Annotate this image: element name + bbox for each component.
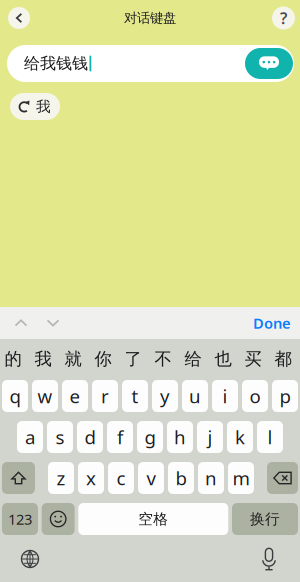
button[interactable]: s bbox=[47, 421, 73, 453]
staticText: f bbox=[117, 425, 123, 449]
staticText: o bbox=[249, 384, 260, 408]
staticText: n bbox=[205, 466, 217, 490]
button[interactable]: b bbox=[168, 462, 194, 494]
button[interactable]: k bbox=[227, 421, 253, 453]
button[interactable]: 空格 bbox=[78, 503, 228, 535]
staticText: r bbox=[101, 384, 109, 408]
button[interactable]: w bbox=[32, 380, 58, 412]
button[interactable]: u bbox=[182, 380, 208, 412]
button[interactable]: Previous field bbox=[5, 307, 37, 339]
staticText: 买 bbox=[244, 348, 261, 370]
staticText: 给 bbox=[184, 348, 201, 370]
button[interactable]: 都 bbox=[268, 339, 298, 379]
staticText: 都 bbox=[274, 348, 291, 370]
staticText: 我 bbox=[34, 348, 51, 370]
button[interactable]: p bbox=[272, 380, 298, 412]
staticText: k bbox=[235, 425, 245, 449]
button[interactable]: 换行 bbox=[232, 503, 298, 535]
staticText: h bbox=[174, 425, 186, 449]
staticText: l bbox=[267, 425, 272, 449]
staticText: m bbox=[232, 466, 249, 490]
button[interactable]: o bbox=[242, 380, 268, 412]
button[interactable]: Next keyboard bbox=[11, 540, 49, 578]
staticText: p bbox=[279, 384, 290, 408]
button[interactable]: z bbox=[48, 462, 74, 494]
button[interactable]: m bbox=[228, 462, 254, 494]
button[interactable]: Delete bbox=[267, 462, 298, 494]
button[interactable]: 不 bbox=[148, 339, 178, 379]
button[interactable]: n bbox=[198, 462, 224, 494]
button[interactable]: l bbox=[257, 421, 283, 453]
staticText: e bbox=[69, 384, 80, 408]
staticText: i bbox=[222, 384, 227, 408]
button[interactable]: Next field bbox=[37, 307, 69, 339]
staticText: c bbox=[116, 466, 125, 490]
staticText: x bbox=[86, 466, 96, 490]
staticText: j bbox=[207, 425, 212, 449]
staticText: 换行 bbox=[250, 510, 280, 528]
button[interactable]: y bbox=[152, 380, 178, 412]
button[interactable]: a bbox=[17, 421, 43, 453]
button[interactable]: Done bbox=[253, 307, 291, 339]
button[interactable]: 我 bbox=[28, 339, 58, 379]
staticText: Done bbox=[253, 313, 291, 333]
staticText: ? bbox=[280, 7, 287, 29]
button[interactable]: h bbox=[167, 421, 193, 453]
staticText: 空格 bbox=[138, 510, 168, 528]
staticText: 你 bbox=[94, 348, 111, 370]
button[interactable]: d bbox=[77, 421, 103, 453]
staticText: y bbox=[160, 384, 170, 408]
button[interactable]: 给 bbox=[178, 339, 208, 379]
button[interactable]: c bbox=[108, 462, 134, 494]
staticText: 就 bbox=[64, 348, 81, 370]
button[interactable]: f bbox=[107, 421, 133, 453]
staticText: t bbox=[131, 384, 138, 408]
staticText: g bbox=[144, 425, 155, 449]
staticText: s bbox=[55, 425, 64, 449]
button[interactable]: 123 bbox=[2, 503, 38, 535]
button[interactable]: 买 bbox=[238, 339, 268, 379]
button[interactable]: 的 bbox=[0, 339, 28, 379]
staticText: q bbox=[9, 384, 20, 408]
staticText: 对话键盘 bbox=[124, 10, 176, 26]
button[interactable]: e bbox=[62, 380, 88, 412]
button[interactable]: Shift bbox=[2, 462, 35, 494]
button[interactable]: 了 bbox=[118, 339, 148, 379]
staticText: 的 bbox=[4, 348, 21, 370]
button[interactable]: v bbox=[138, 462, 164, 494]
button[interactable]: Emoji bbox=[42, 503, 75, 535]
button[interactable]: x bbox=[78, 462, 104, 494]
button[interactable]: 也 bbox=[208, 339, 238, 379]
button[interactable]: 你 bbox=[88, 339, 118, 379]
button[interactable]: Help bbox=[272, 6, 295, 29]
staticText: d bbox=[84, 425, 95, 449]
staticText: a bbox=[25, 425, 35, 449]
button[interactable]: i bbox=[212, 380, 238, 412]
button[interactable]: t bbox=[122, 380, 148, 412]
staticText: w bbox=[37, 384, 52, 408]
button[interactable]: 我 bbox=[10, 93, 60, 120]
button[interactable]: Dictation bbox=[250, 540, 288, 578]
button[interactable]: r bbox=[92, 380, 118, 412]
button[interactable]: q bbox=[2, 380, 28, 412]
button[interactable]: j bbox=[197, 421, 223, 453]
staticText: 123 bbox=[8, 509, 32, 529]
staticText: 了 bbox=[124, 348, 141, 370]
staticText: 我 bbox=[36, 97, 51, 115]
staticText: v bbox=[146, 466, 155, 490]
button[interactable]: Back bbox=[8, 7, 30, 29]
button[interactable]: 就 bbox=[58, 339, 88, 379]
staticText: 给我钱钱 bbox=[24, 54, 88, 73]
staticText: u bbox=[189, 384, 201, 408]
staticText: 也 bbox=[214, 348, 231, 370]
button[interactable]: Send bbox=[245, 48, 293, 79]
staticText: z bbox=[56, 466, 65, 490]
staticText: b bbox=[175, 466, 186, 490]
button[interactable]: g bbox=[137, 421, 163, 453]
staticText: 不 bbox=[154, 348, 171, 370]
